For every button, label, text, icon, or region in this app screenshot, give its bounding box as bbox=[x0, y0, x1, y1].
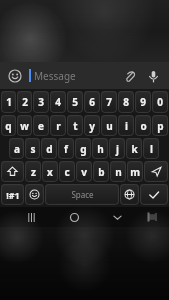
staticText: y bbox=[89, 119, 95, 133]
button[interactable]: s bbox=[25, 138, 40, 159]
button[interactable]: Home bbox=[64, 207, 84, 227]
staticText: u bbox=[106, 119, 113, 133]
staticText: a bbox=[14, 142, 20, 156]
button[interactable]: k bbox=[126, 138, 142, 159]
button[interactable]: c bbox=[59, 161, 75, 182]
button[interactable]: l bbox=[143, 138, 159, 159]
staticText: z bbox=[31, 165, 36, 179]
button[interactable]: n bbox=[110, 161, 126, 182]
button[interactable]: 9 bbox=[135, 91, 151, 113]
staticText: 3 bbox=[38, 95, 44, 109]
staticText: 0 bbox=[157, 95, 163, 109]
button[interactable]: u bbox=[101, 115, 117, 136]
button[interactable]: Recents bbox=[21, 207, 41, 227]
button[interactable]: Send bbox=[144, 161, 168, 182]
staticText: 1 bbox=[6, 95, 12, 109]
staticText: j bbox=[116, 142, 119, 156]
staticText: r bbox=[56, 119, 61, 133]
staticText: k bbox=[131, 142, 138, 156]
button[interactable]: f bbox=[58, 138, 74, 159]
staticText: d bbox=[46, 142, 53, 156]
staticText: l bbox=[150, 142, 153, 156]
staticText: o bbox=[140, 119, 147, 133]
button[interactable]: i bbox=[118, 115, 134, 136]
button[interactable]: e bbox=[33, 115, 49, 136]
button[interactable]: r bbox=[50, 115, 66, 136]
button[interactable]: w bbox=[17, 115, 32, 136]
button[interactable]: Enter bbox=[140, 184, 168, 205]
button[interactable]: 8 bbox=[118, 91, 134, 113]
staticText: !#1 bbox=[6, 189, 20, 201]
button[interactable]: y bbox=[84, 115, 100, 136]
staticText: s bbox=[30, 142, 36, 156]
button[interactable]: Attach bbox=[119, 66, 139, 86]
staticText: v bbox=[81, 165, 87, 179]
staticText: w bbox=[20, 119, 29, 133]
staticText: 6 bbox=[89, 95, 95, 109]
button[interactable]: z bbox=[25, 161, 41, 182]
staticText: n bbox=[115, 165, 122, 179]
staticText: m bbox=[130, 165, 140, 179]
button[interactable]: o bbox=[135, 115, 151, 136]
button[interactable]: h bbox=[92, 138, 108, 159]
staticText: Space bbox=[71, 189, 94, 200]
staticText: c bbox=[64, 165, 70, 179]
button[interactable]: a bbox=[9, 138, 24, 159]
staticText: 2 bbox=[22, 95, 28, 109]
button[interactable]: Keyboard switcher bbox=[142, 207, 162, 227]
staticText: i bbox=[125, 119, 128, 133]
staticText: 9 bbox=[140, 95, 146, 109]
button[interactable]: p bbox=[152, 115, 168, 136]
button[interactable]: Space bbox=[45, 184, 119, 205]
button[interactable]: Emoji keyboard bbox=[25, 184, 44, 205]
button[interactable]: 4 bbox=[50, 91, 66, 113]
button[interactable]: 0 bbox=[152, 91, 168, 113]
button[interactable]: q bbox=[1, 115, 16, 136]
button[interactable]: Emoji bbox=[6, 67, 24, 85]
staticText: b bbox=[98, 165, 105, 179]
staticText: e bbox=[38, 119, 44, 133]
staticText: h bbox=[97, 142, 104, 156]
staticText: f bbox=[64, 142, 68, 156]
button[interactable]: !#1 bbox=[1, 184, 24, 205]
button[interactable]: m bbox=[127, 161, 143, 182]
staticText: p bbox=[157, 119, 164, 133]
staticText: x bbox=[47, 165, 53, 179]
staticText: q bbox=[5, 119, 12, 133]
button[interactable]: Voice input bbox=[143, 66, 163, 86]
button[interactable]: 5 bbox=[67, 91, 83, 113]
button[interactable]: x bbox=[42, 161, 58, 182]
button[interactable]: Hide keyboard bbox=[107, 207, 127, 227]
staticText: t bbox=[73, 119, 78, 133]
staticText: Message bbox=[34, 69, 76, 83]
button[interactable]: b bbox=[93, 161, 109, 182]
button[interactable]: 3 bbox=[33, 91, 49, 113]
staticText: 7 bbox=[106, 95, 112, 109]
button[interactable]: j bbox=[109, 138, 125, 159]
button[interactable]: 1 bbox=[1, 91, 16, 113]
button[interactable]: d bbox=[41, 138, 57, 159]
button[interactable]: g bbox=[75, 138, 91, 159]
staticText: g bbox=[80, 142, 87, 156]
staticText: 5 bbox=[72, 95, 78, 109]
button[interactable]: v bbox=[76, 161, 92, 182]
button[interactable]: 2 bbox=[17, 91, 32, 113]
button[interactable]: Change language bbox=[120, 184, 139, 205]
staticText: 8 bbox=[123, 95, 129, 109]
button[interactable]: t bbox=[67, 115, 83, 136]
button[interactable]: Shift bbox=[1, 161, 24, 182]
staticText: 4 bbox=[55, 95, 61, 109]
button[interactable]: 6 bbox=[84, 91, 100, 113]
button[interactable]: 7 bbox=[101, 91, 117, 113]
